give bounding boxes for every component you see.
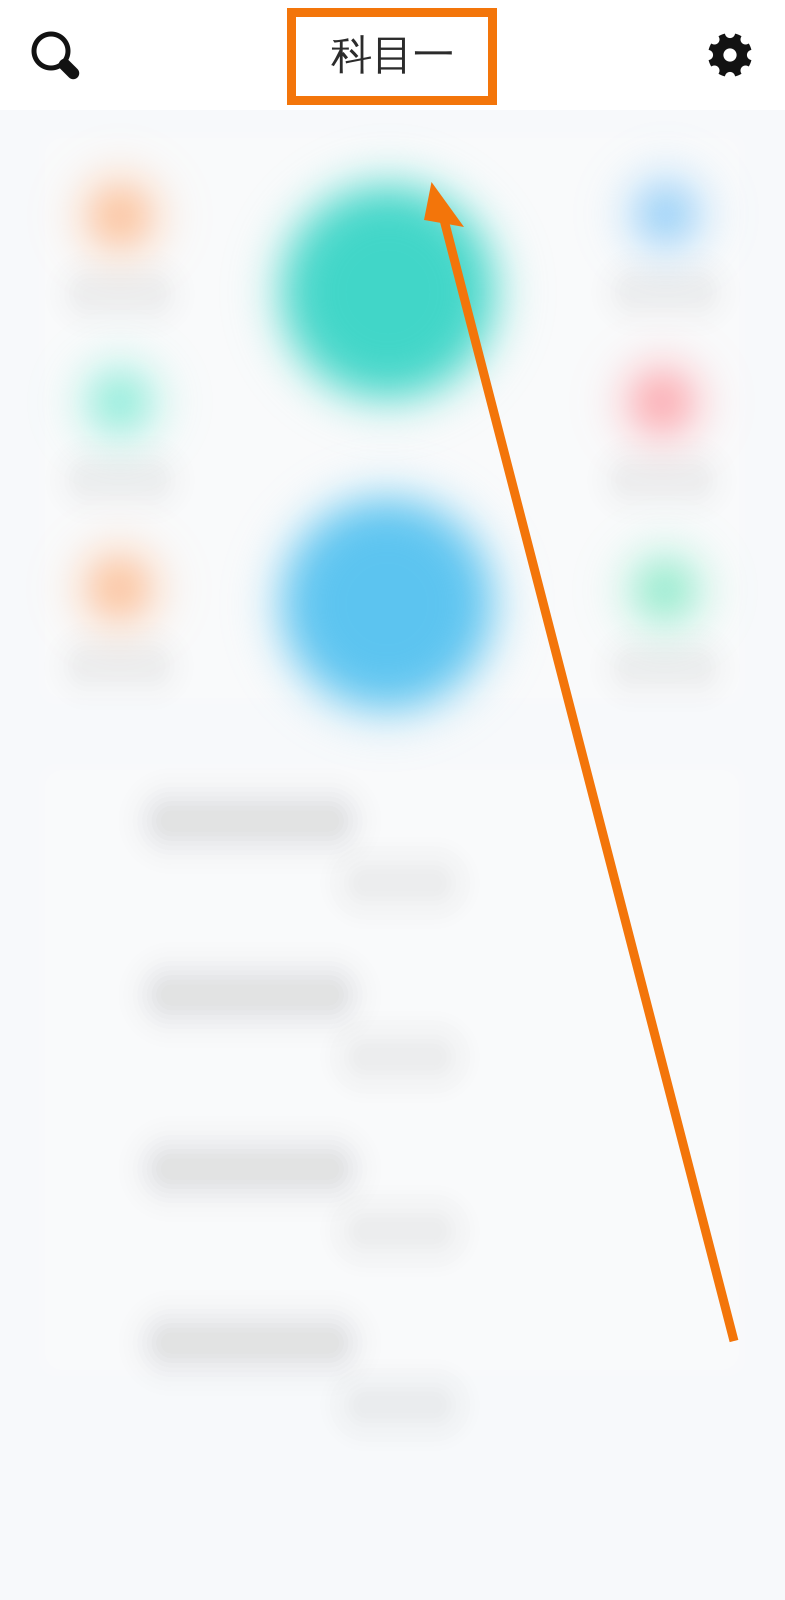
button[interactable]: Search: [12, 12, 98, 98]
staticText: 科目一: [331, 30, 454, 80]
button[interactable]: Settings: [687, 12, 773, 98]
